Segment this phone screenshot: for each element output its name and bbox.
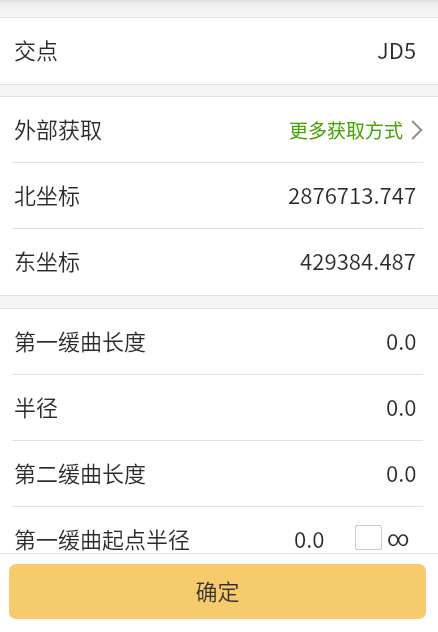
button[interactable]: Infinite radius	[355, 525, 382, 550]
button[interactable]: 东坐标	[0, 229, 438, 295]
staticText: 更多获取方式	[289, 116, 404, 144]
staticText: 北坐标	[14, 178, 81, 210]
button[interactable]: 第二缓曲长度	[0, 441, 438, 507]
button[interactable]: 半径	[0, 375, 438, 441]
staticText: 交点	[14, 33, 59, 65]
staticText: 0.0	[386, 324, 417, 356]
staticText: 东坐标	[14, 244, 81, 276]
staticText: 半径	[14, 390, 59, 422]
staticText: 0.0	[386, 390, 417, 422]
staticText: 第二缓曲长度	[14, 456, 147, 488]
button[interactable]: 第一缓曲起点半径	[0, 507, 438, 573]
staticText: 429384.487	[300, 244, 417, 276]
button[interactable]: 确定	[9, 564, 426, 619]
button[interactable]: 北坐标	[0, 163, 438, 229]
staticText: 确定	[195, 574, 240, 606]
staticText: 0.0	[386, 456, 417, 488]
button[interactable]: 交点	[0, 18, 438, 84]
staticText: 2876713.747	[288, 178, 417, 210]
staticText: 第一缓曲长度	[14, 324, 147, 356]
button[interactable]: 外部获取	[0, 97, 438, 163]
staticText: 外部获取	[14, 112, 103, 144]
staticText: 第一缓曲起点半径	[14, 522, 191, 554]
staticText: JD5	[377, 33, 417, 65]
button[interactable]: 第一缓曲长度	[0, 309, 438, 375]
staticText: 0.0	[294, 522, 325, 554]
staticText: ∞	[387, 526, 410, 552]
